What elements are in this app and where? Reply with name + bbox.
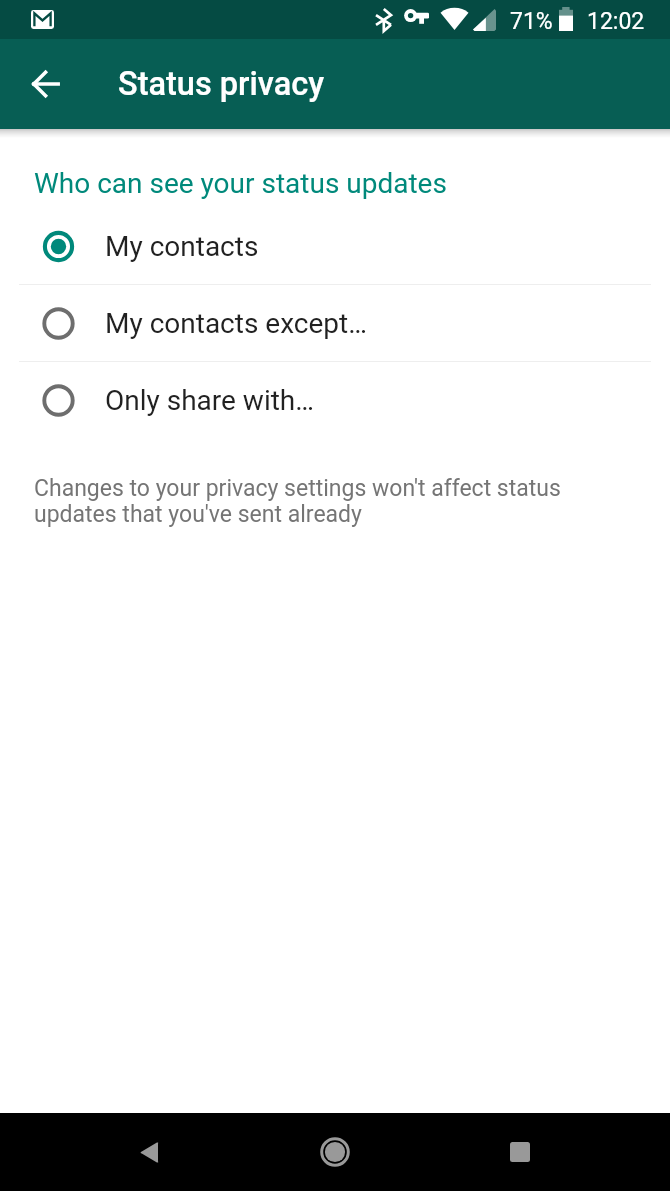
button[interactable]: My contacts: [0, 208, 670, 285]
staticText: 71%: [510, 8, 553, 35]
button[interactable]: My contacts except…: [0, 285, 670, 362]
button[interactable]: Back: [0, 39, 90, 129]
button[interactable]: Only share with…: [0, 362, 670, 439]
staticText: My contacts except…: [105, 307, 367, 340]
staticText: 12:02: [587, 8, 645, 35]
staticText: Status privacy: [118, 65, 325, 103]
staticText: Changes to your privacy settings won't a…: [34, 475, 574, 528]
button[interactable]: Recent apps: [474, 1113, 566, 1191]
button[interactable]: Back: [103, 1113, 195, 1191]
button[interactable]: Home: [289, 1113, 381, 1191]
staticText: My contacts: [105, 230, 259, 263]
staticText: Who can see your status updates: [34, 167, 447, 200]
staticText: Only share with…: [105, 384, 315, 417]
